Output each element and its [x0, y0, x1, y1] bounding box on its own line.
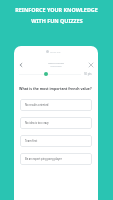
- button[interactable]: Close: [85, 59, 96, 70]
- staticText: WITH FUN QUIZZES: [31, 17, 83, 24]
- staticText: No results oriented: [25, 103, 49, 107]
- staticText: No idea is too crazy: [25, 121, 49, 125]
- button[interactable]: Be an expert ping pong player: [20, 153, 92, 165]
- staticText: What is the most important french value?: [19, 86, 96, 91]
- staticText: Intermediate: [50, 65, 62, 67]
- button[interactable]: No results oriented: [20, 99, 92, 111]
- button[interactable]: Team first: [20, 135, 92, 147]
- button[interactable]: No idea is too crazy: [20, 117, 92, 129]
- staticText: 00:30 left: [50, 50, 61, 53]
- staticText: Be an expert ping pong player: [25, 157, 62, 161]
- staticText: Team first: [25, 139, 38, 143]
- staticText: 50 pts: [84, 72, 92, 76]
- staticText: REINFORCE YOUR KNOWLEDGE: [15, 6, 98, 13]
- staticText: FRENCH CULTURE: [48, 62, 64, 64]
- button[interactable]: Back: [15, 59, 26, 70]
